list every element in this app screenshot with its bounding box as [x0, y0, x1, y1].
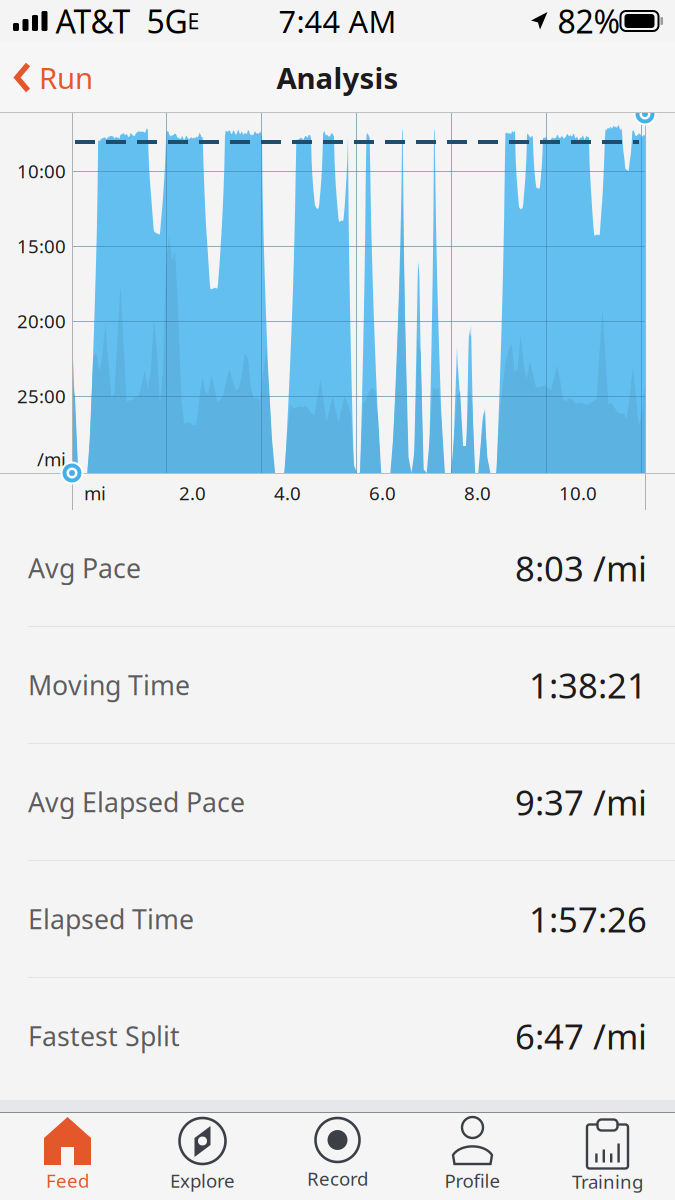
staticText: 8:03 /mi: [515, 545, 647, 591]
staticText: Run: [39, 58, 93, 97]
staticText: 8.0: [464, 481, 491, 505]
staticText: 1:38:21: [529, 662, 647, 708]
staticText: Avg Pace: [28, 550, 141, 586]
button[interactable]: Training: [540, 1112, 675, 1200]
staticText: E: [187, 7, 199, 35]
button[interactable]: Fastest Split: [0, 978, 675, 1094]
staticText: Feed: [46, 1168, 89, 1193]
staticText: Explore: [170, 1168, 235, 1193]
button[interactable]: Profile: [405, 1112, 540, 1200]
button[interactable]: Feed: [0, 1112, 135, 1200]
staticText: Moving Time: [28, 667, 190, 703]
button[interactable]: Explore: [135, 1112, 270, 1200]
button[interactable]: Record: [270, 1112, 405, 1200]
staticText: Record: [307, 1166, 368, 1191]
staticText: 15:00: [17, 234, 66, 258]
staticText: Fastest Split: [28, 1018, 180, 1054]
staticText: 10.0: [559, 481, 597, 505]
staticText: 1:57:26: [529, 896, 647, 942]
staticText: 82%: [549, 0, 620, 42]
staticText: 20:00: [17, 309, 66, 333]
staticText: mi: [84, 481, 106, 505]
staticText: Avg Elapsed Pace: [28, 784, 245, 820]
staticText: 2.0: [179, 481, 206, 505]
staticText: Profile: [444, 1168, 500, 1193]
staticText: Training: [572, 1169, 643, 1194]
button[interactable]: Avg Elapsed Pace: [0, 744, 675, 860]
button[interactable]: Moving Time: [0, 627, 675, 743]
staticText: 5G: [130, 0, 187, 42]
staticText: 7:44 AM: [278, 1, 396, 41]
staticText: /mi: [37, 447, 66, 471]
button[interactable]: Run: [0, 49, 93, 106]
staticText: 10:00: [17, 159, 66, 183]
staticText: 6:47 /mi: [515, 1013, 647, 1059]
staticText: 25:00: [17, 384, 66, 408]
staticText: 6.0: [369, 481, 396, 505]
staticText: AT&T: [47, 0, 130, 42]
staticText: Elapsed Time: [28, 901, 194, 937]
staticText: 4.0: [274, 481, 301, 505]
button[interactable]: Elapsed Time: [0, 861, 675, 977]
staticText: Analysis: [276, 58, 398, 97]
button[interactable]: Avg Pace: [0, 510, 675, 626]
staticText: 9:37 /mi: [515, 779, 647, 825]
